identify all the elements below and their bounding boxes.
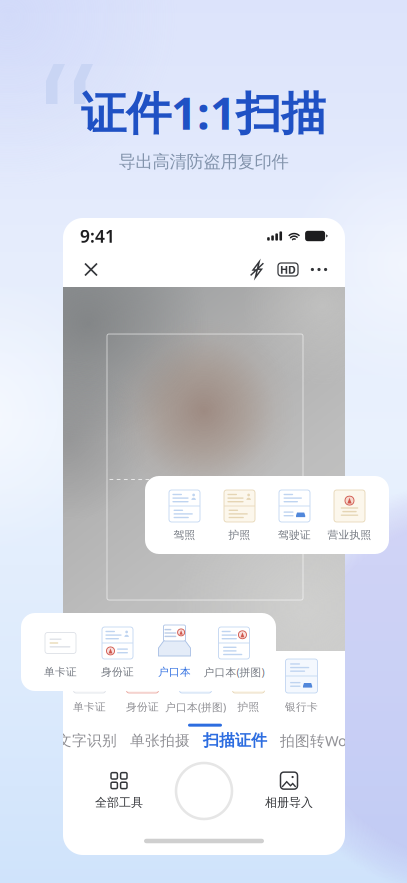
staticText: 身份证 [126,700,159,713]
staticText: 户口本(拼图) [203,665,264,679]
button[interactable]: 单卡证 [63,659,116,713]
button[interactable]: 户口本(拼图) [203,626,265,678]
button[interactable]: 全部工具 [83,771,155,811]
button[interactable]: 银行卡 [275,659,328,713]
button[interactable]: Flash [242,254,272,284]
button[interactable]: 户口本(拼图) [169,659,222,713]
button[interactable]: 营业执照 [322,489,377,541]
staticText: 单卡证 [44,665,77,678]
staticText: 文字识别 [57,731,117,749]
button[interactable]: 护照 [222,659,275,713]
staticText: 拍图转Word [280,731,362,750]
staticText: 全部工具 [95,795,143,810]
staticText: 营业执照 [327,528,371,541]
staticText: 扫描证件 [203,731,267,750]
button[interactable]: HD quality [272,254,304,284]
button[interactable]: 相册导入 [253,771,325,811]
staticText: 9:41 [80,224,115,247]
button[interactable]: 户口本 [146,626,203,678]
staticText: 户口本 [158,665,191,678]
staticText: 身份证 [101,665,134,678]
button[interactable]: Close [74,254,108,284]
button[interactable]: 单卡证 [32,626,89,678]
staticText: 导出高清防盗用复印件 [118,151,288,172]
staticText: 单张拍摄 [130,731,190,749]
button[interactable]: 驾驶证 [267,489,322,541]
button[interactable]: 身份证 [89,626,146,678]
staticText: 护照 [237,700,259,713]
staticText: 证件1:1扫描 [81,82,326,142]
button[interactable]: 驾照 [157,489,212,541]
button[interactable]: 身份证 [116,659,169,713]
button[interactable]: 护照 [212,489,267,541]
staticText: 护照 [228,528,250,541]
staticText: 单卡证 [73,700,106,713]
button[interactable]: Shutter [176,763,232,819]
button[interactable]: More options [304,254,334,284]
staticText: HD [280,262,296,277]
staticText: 银行卡 [285,700,318,713]
staticText: 驾驶证 [278,528,311,541]
staticText: 驾照 [173,528,195,541]
staticText: 户口本(拼图) [165,700,226,714]
staticText: 相册导入 [265,795,313,810]
